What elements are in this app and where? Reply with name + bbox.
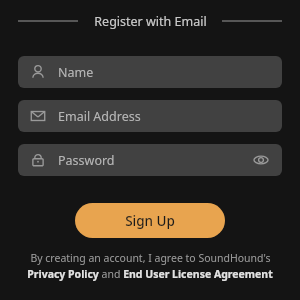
button[interactable]: Sign Up [75, 203, 225, 238]
staticText: Email Address [58, 108, 141, 125]
staticText: Register with Email [94, 13, 207, 30]
button[interactable]: Email Address [18, 100, 282, 132]
staticText: Password [58, 152, 115, 169]
button[interactable]: Privacy Policy and End User License Agre… [27, 267, 273, 281]
staticText: By creating an account, I agree to Sound… [30, 251, 271, 265]
button[interactable]: Password [18, 144, 282, 176]
staticText: Sign Up [125, 212, 175, 230]
button[interactable]: Show password [252, 151, 270, 169]
staticText: Name [58, 64, 94, 81]
staticText: Privacy Policy and End User License Agre… [27, 267, 273, 281]
button[interactable]: Name [18, 56, 282, 88]
